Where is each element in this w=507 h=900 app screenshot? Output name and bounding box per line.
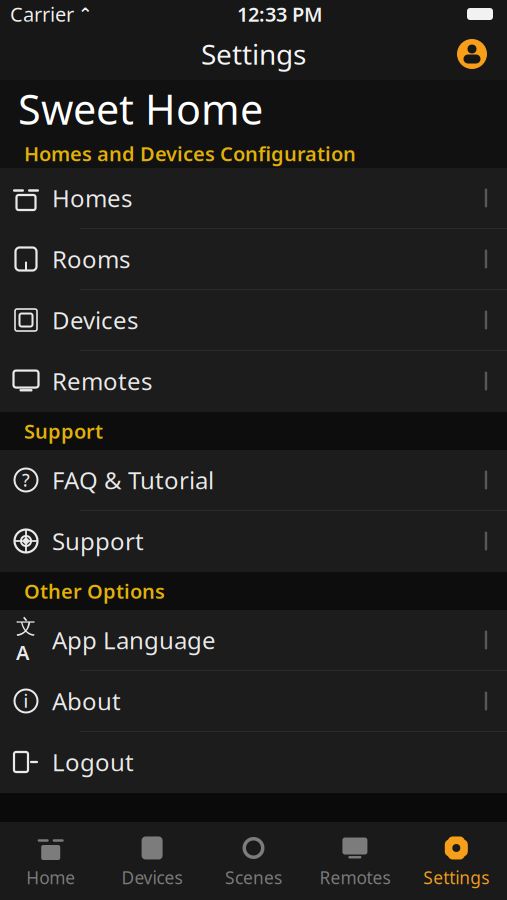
button[interactable]: Support [0, 511, 507, 572]
button[interactable]: Home [0, 830, 101, 892]
staticText: Remotes [52, 365, 152, 397]
staticText: App Language [52, 624, 216, 656]
button[interactable]: Remotes [304, 830, 406, 892]
button[interactable]: ? [0, 450, 507, 511]
button[interactable]: Homes [0, 168, 507, 229]
button[interactable]: Account [455, 37, 507, 71]
button[interactable]: Remotes [0, 351, 507, 412]
staticText: Sweet Home [18, 81, 263, 136]
staticText: 12:33 PM [237, 1, 323, 27]
staticText: Remotes [319, 866, 390, 889]
staticText: FAQ & Tutorial [52, 464, 214, 496]
staticText: Support [24, 418, 103, 444]
button[interactable]: 文A [0, 610, 507, 671]
staticText: Logout [52, 746, 134, 778]
button[interactable]: Devices [0, 290, 507, 351]
staticText: Rooms [52, 243, 130, 275]
staticText: Carrier [10, 1, 74, 27]
staticText: Homes [52, 182, 132, 214]
staticText: Homes and Devices Configuration [24, 140, 356, 167]
staticText: 文A [16, 614, 36, 665]
staticText: ⌃ [78, 4, 93, 24]
staticText: Settings [201, 35, 306, 73]
staticText: ? [22, 468, 30, 491]
staticText: Devices [52, 304, 138, 336]
staticText: Other Options [24, 578, 165, 604]
button[interactable]: Devices [101, 830, 203, 892]
staticText: i [23, 689, 28, 712]
staticText: Support [52, 525, 144, 557]
staticText: Settings [423, 866, 489, 889]
button[interactable]: Logout [0, 732, 507, 793]
staticText: About [52, 685, 121, 717]
button[interactable]: Scenes [203, 830, 304, 892]
staticText: Home [26, 866, 75, 889]
button[interactable]: i [0, 671, 507, 732]
staticText: Scenes [225, 866, 282, 889]
button[interactable]: Rooms [0, 229, 507, 290]
staticText: Devices [122, 866, 183, 889]
button[interactable]: Settings [406, 830, 507, 892]
